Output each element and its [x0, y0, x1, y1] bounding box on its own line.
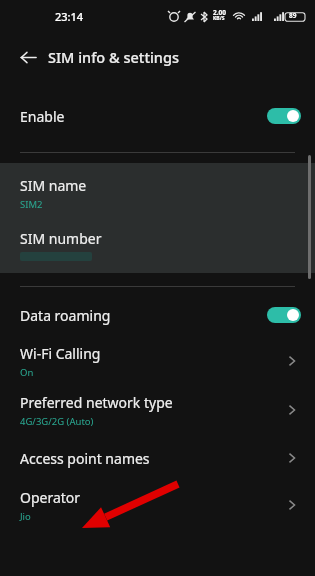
staticText: Data roaming — [20, 306, 111, 325]
staticText: 4G/3G/2G (Auto) — [20, 415, 94, 428]
staticText: SIM number — [20, 229, 102, 248]
staticText: Enable — [20, 107, 65, 126]
button[interactable]: Data roaming — [0, 293, 315, 337]
button[interactable]: SIM number — [0, 223, 315, 267]
staticText: Preferred network type — [20, 393, 173, 412]
button[interactable]: Operator — [0, 481, 315, 529]
staticText: Wi-Fi Calling — [20, 344, 101, 363]
staticText: 23:14 — [55, 9, 84, 24]
staticText: Jio — [20, 510, 31, 523]
staticText: Access point names — [20, 449, 150, 468]
staticText: 2.00 — [213, 8, 226, 17]
button[interactable]: Wi-Fi Calling — [0, 337, 315, 385]
button[interactable]: Toggle — [267, 108, 301, 124]
button[interactable]: Toggle — [267, 307, 301, 323]
button[interactable]: Back — [12, 41, 44, 73]
staticText: SIM info & settings — [48, 47, 179, 67]
staticText: On — [20, 366, 34, 379]
staticText: SIM2 — [20, 198, 43, 211]
staticText: Operator — [20, 488, 81, 507]
button[interactable]: Preferred network type — [0, 385, 315, 435]
button[interactable]: Access point names — [0, 435, 315, 481]
button[interactable]: Enable — [0, 94, 315, 138]
staticText: SIM name — [20, 176, 87, 195]
button[interactable]: SIM name — [0, 171, 315, 215]
staticText: KB/S — [213, 15, 225, 22]
staticText: 89 — [289, 11, 297, 20]
